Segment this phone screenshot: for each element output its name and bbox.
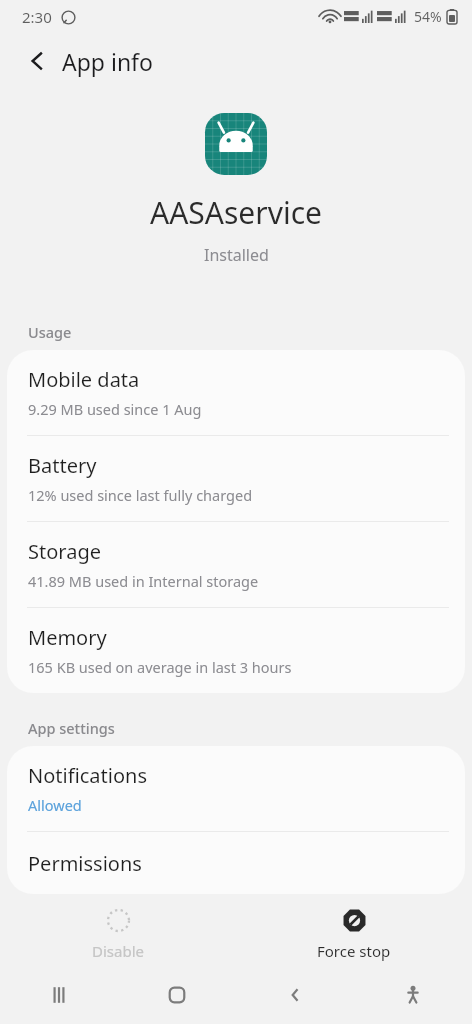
staticText: 54% — [414, 7, 442, 26]
staticText: Disable — [92, 941, 144, 961]
button[interactable]: Back — [236, 966, 354, 1024]
staticText: Mobile data — [28, 366, 140, 393]
staticText: App settings — [28, 718, 115, 738]
button[interactable]: Back — [13, 37, 61, 85]
staticText: Usage — [28, 322, 72, 342]
staticText: App info — [62, 46, 153, 77]
staticText: Installed — [204, 244, 269, 266]
button[interactable]: Memory — [7, 608, 465, 693]
staticText: Permissions — [28, 850, 142, 877]
staticText: Memory — [28, 624, 107, 651]
button[interactable]: Battery — [7, 436, 465, 522]
staticText: Notifications — [28, 762, 147, 789]
staticText: AASAservice — [150, 192, 322, 233]
staticText: Force stop — [317, 941, 391, 961]
staticText: 165 KB used on average in last 3 hours — [28, 657, 292, 677]
button[interactable]: Notifications — [7, 746, 465, 832]
button[interactable]: Disable — [0, 903, 236, 966]
staticText: Allowed — [28, 795, 82, 815]
button[interactable]: Recents — [0, 966, 118, 1024]
staticText: 41.89 MB used in Internal storage — [28, 571, 259, 591]
button[interactable]: Mobile data — [7, 350, 465, 436]
button[interactable]: Storage — [7, 522, 465, 608]
staticText: Battery — [28, 452, 97, 479]
staticText: 2:30 — [22, 7, 52, 27]
staticText: Storage — [28, 538, 101, 565]
staticText: 12% used since last fully charged — [28, 485, 253, 505]
button[interactable]: Permissions — [7, 832, 465, 894]
staticText: 9.29 MB used since 1 Aug — [28, 399, 202, 419]
button[interactable]: Home — [118, 966, 236, 1024]
button[interactable]: Accessibility — [354, 966, 472, 1024]
button[interactable]: Force stop — [236, 903, 472, 966]
